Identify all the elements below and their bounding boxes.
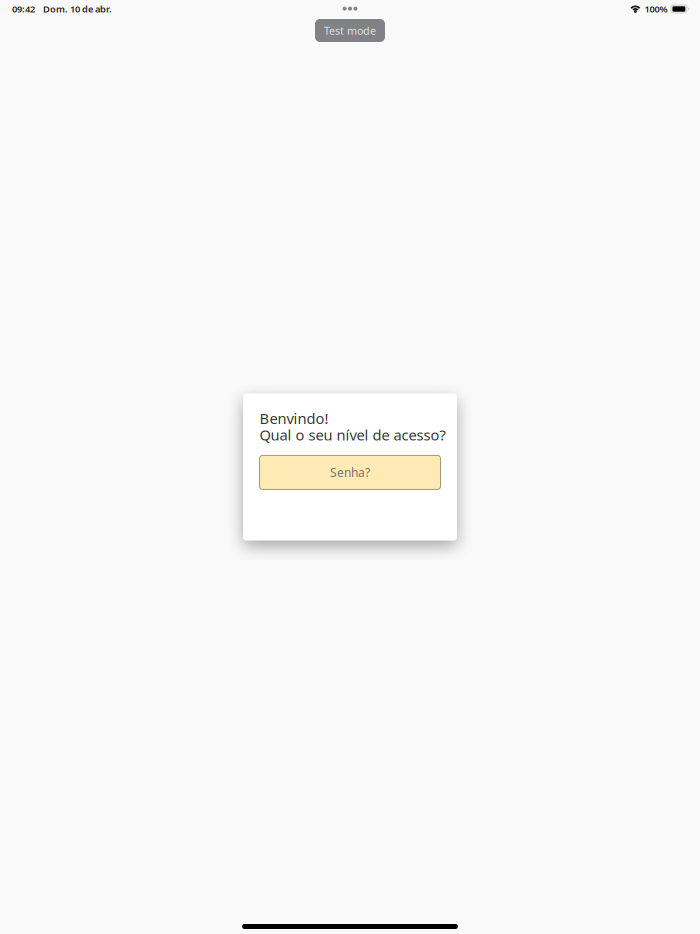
staticText: 100% [644, 3, 667, 15]
button[interactable]: Senha? [259, 455, 440, 489]
staticText: 09:42 [12, 3, 35, 15]
staticText: Dom. 10 de abr. [43, 3, 112, 15]
staticText: Benvindo! [259, 408, 328, 428]
staticText: Senha? [330, 464, 370, 480]
staticText: Qual o seu nível de acesso? [259, 425, 445, 444]
staticText: Test mode [324, 23, 376, 38]
button[interactable]: Test mode [315, 19, 385, 42]
